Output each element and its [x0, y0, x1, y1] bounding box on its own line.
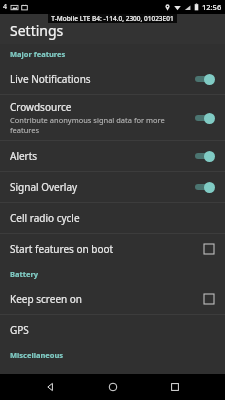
staticText: Live Notifications: [10, 72, 91, 86]
button[interactable]: Live Notifications: [0, 64, 225, 94]
button[interactable]: Keep screen on: [0, 284, 225, 314]
staticText: Major features: [10, 49, 66, 59]
staticText: Cell radio cycle: [10, 211, 80, 225]
staticText: Battery: [10, 269, 39, 279]
staticText: Settings: [10, 21, 64, 40]
button[interactable]: Home: [100, 374, 126, 400]
staticText: Signal Overlay: [10, 180, 78, 194]
staticText: Contribute anonymous signal data for mor…: [10, 115, 165, 135]
button[interactable]: Alerts: [0, 141, 225, 171]
staticText: Alerts: [10, 149, 38, 163]
button[interactable]: Cell radio cycle: [0, 203, 225, 233]
staticText: 4: [3, 2, 8, 12]
button[interactable]: Crowdsource: [0, 95, 225, 140]
button[interactable]: Signal Overlay: [0, 172, 225, 202]
button[interactable]: Start features on boot: [0, 234, 225, 264]
staticText: T-Mobile LTE B4: -114.0, 2300, 01023E01: [51, 14, 174, 23]
staticText: 12:56: [202, 2, 222, 12]
staticText: GPS: [10, 323, 29, 337]
staticText: Miscellaneous: [10, 350, 64, 360]
button[interactable]: Back: [37, 374, 63, 400]
staticText: Keep screen on: [10, 292, 204, 306]
button[interactable]: Recent apps: [162, 374, 188, 400]
staticText: Crowdsource: [10, 100, 72, 114]
button[interactable]: GPS: [0, 315, 225, 345]
staticText: Start features on boot: [10, 242, 204, 256]
